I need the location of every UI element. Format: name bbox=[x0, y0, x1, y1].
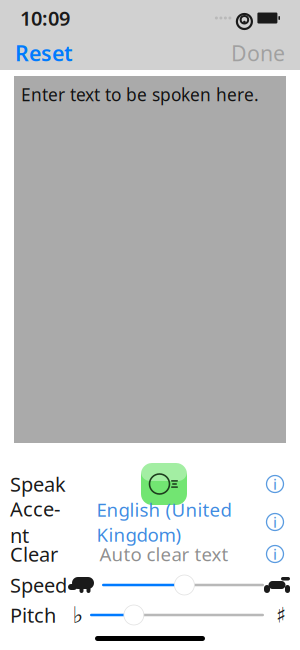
staticText: i bbox=[273, 512, 277, 532]
staticText: Enter text to be spoken here. bbox=[21, 83, 259, 106]
button[interactable]: Done bbox=[229, 31, 287, 75]
staticText: Speed bbox=[10, 572, 67, 598]
staticText: English (United Kingdom) bbox=[96, 497, 231, 547]
button[interactable]: Reset bbox=[13, 31, 75, 75]
staticText: ♯ bbox=[276, 603, 286, 627]
button[interactable]: Information bbox=[260, 539, 290, 569]
button[interactable]: Information bbox=[260, 507, 290, 537]
staticText: 10:09 bbox=[20, 5, 70, 31]
staticText: Pitch bbox=[10, 602, 56, 628]
button[interactable]: Information bbox=[260, 469, 290, 499]
staticText: i bbox=[273, 544, 277, 564]
button[interactable]: Speak bbox=[141, 463, 187, 505]
staticText: Auto clear text bbox=[99, 542, 228, 566]
staticText: i bbox=[273, 474, 277, 494]
staticText: Speak bbox=[10, 471, 66, 497]
button[interactable]: English (United Kingdom) bbox=[96, 491, 231, 553]
staticText: Accent bbox=[10, 495, 60, 548]
staticText: Reset bbox=[15, 39, 73, 67]
staticText: Clear bbox=[10, 541, 58, 567]
staticText: ♭ bbox=[72, 602, 83, 628]
staticText: Done bbox=[231, 39, 285, 67]
